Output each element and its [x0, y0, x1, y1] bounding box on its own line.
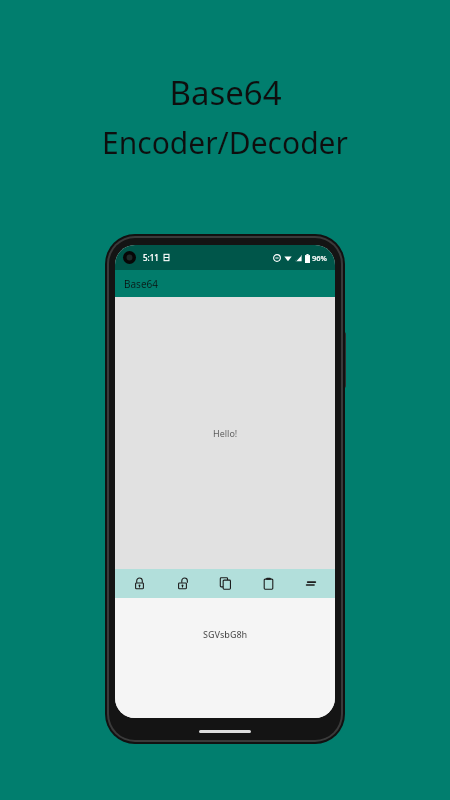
button[interactable]: Decode [163, 569, 201, 598]
staticText: SGVsbG8h [203, 628, 248, 640]
button[interactable]: Paste [249, 569, 287, 598]
staticText: Hello! [213, 427, 238, 439]
button[interactable]: Encode [120, 569, 158, 598]
staticText: Base64 [169, 70, 282, 115]
button[interactable]: Clear [292, 569, 330, 598]
staticText: Base64 [124, 277, 158, 291]
button[interactable]: Copy [206, 569, 244, 598]
staticText: 5:11 [143, 252, 159, 263]
staticText: Encoder/Decoder [102, 122, 348, 163]
staticText: 96% [312, 253, 327, 263]
